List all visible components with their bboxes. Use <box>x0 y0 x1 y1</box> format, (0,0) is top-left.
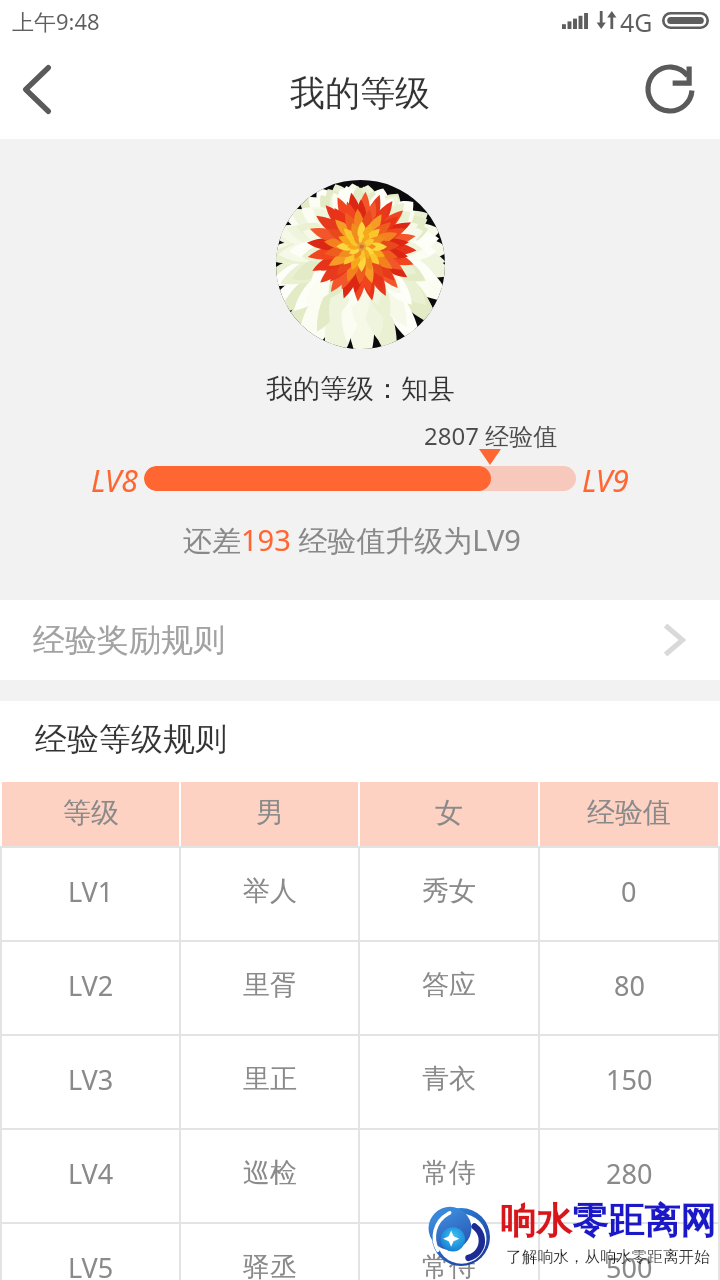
staticText: LV4 <box>68 1155 114 1192</box>
staticText: 我的等级 <box>290 71 430 115</box>
staticText: 4G <box>620 5 653 39</box>
staticText: 巡检 <box>243 1156 297 1190</box>
staticText: LV9 <box>582 460 629 501</box>
staticText: 常侍 <box>422 1250 476 1280</box>
staticText: 280 <box>606 1155 653 1192</box>
staticText: 上午9:48 <box>12 6 100 36</box>
staticText: 还差193 经验值升级为LV9 <box>183 520 521 560</box>
staticText: 经验等级规则 <box>35 719 227 759</box>
staticText: 经验奖励规则 <box>33 620 225 660</box>
staticText: 我的等级：知县 <box>266 372 455 406</box>
staticText: 500 <box>606 1249 653 1280</box>
staticText: 驿丞 <box>243 1250 297 1280</box>
staticText: 举人 <box>243 874 297 908</box>
staticText: LV1 <box>68 873 114 910</box>
button[interactable]: Back <box>0 46 78 139</box>
staticText: 响水零距离网 <box>500 1198 716 1243</box>
staticText: 里正 <box>243 1062 297 1096</box>
staticText: 0 <box>621 873 637 910</box>
staticText: 里胥 <box>243 968 297 1002</box>
staticText: 男 <box>256 795 284 830</box>
staticText: 了解响水，从响水零距离开始 <box>506 1247 710 1267</box>
staticText: 150 <box>606 1061 653 1098</box>
staticText: 女 <box>435 795 463 830</box>
staticText: 等级 <box>63 795 119 830</box>
staticText: 80 <box>614 967 645 1004</box>
staticText: 常侍 <box>422 1156 476 1190</box>
staticText: LV2 <box>68 967 114 1004</box>
staticText: 秀女 <box>422 874 476 908</box>
staticText: 答应 <box>422 968 476 1002</box>
staticText: 2807 经验值 <box>424 419 558 452</box>
button[interactable]: 经验奖励规则 <box>0 600 720 680</box>
staticText: LV3 <box>68 1061 114 1098</box>
staticText: LV5 <box>68 1249 114 1280</box>
staticText: 经验值 <box>587 795 671 830</box>
staticText: 青衣 <box>422 1062 476 1096</box>
staticText: LV8 <box>91 460 138 501</box>
button[interactable]: Refresh <box>642 46 720 139</box>
